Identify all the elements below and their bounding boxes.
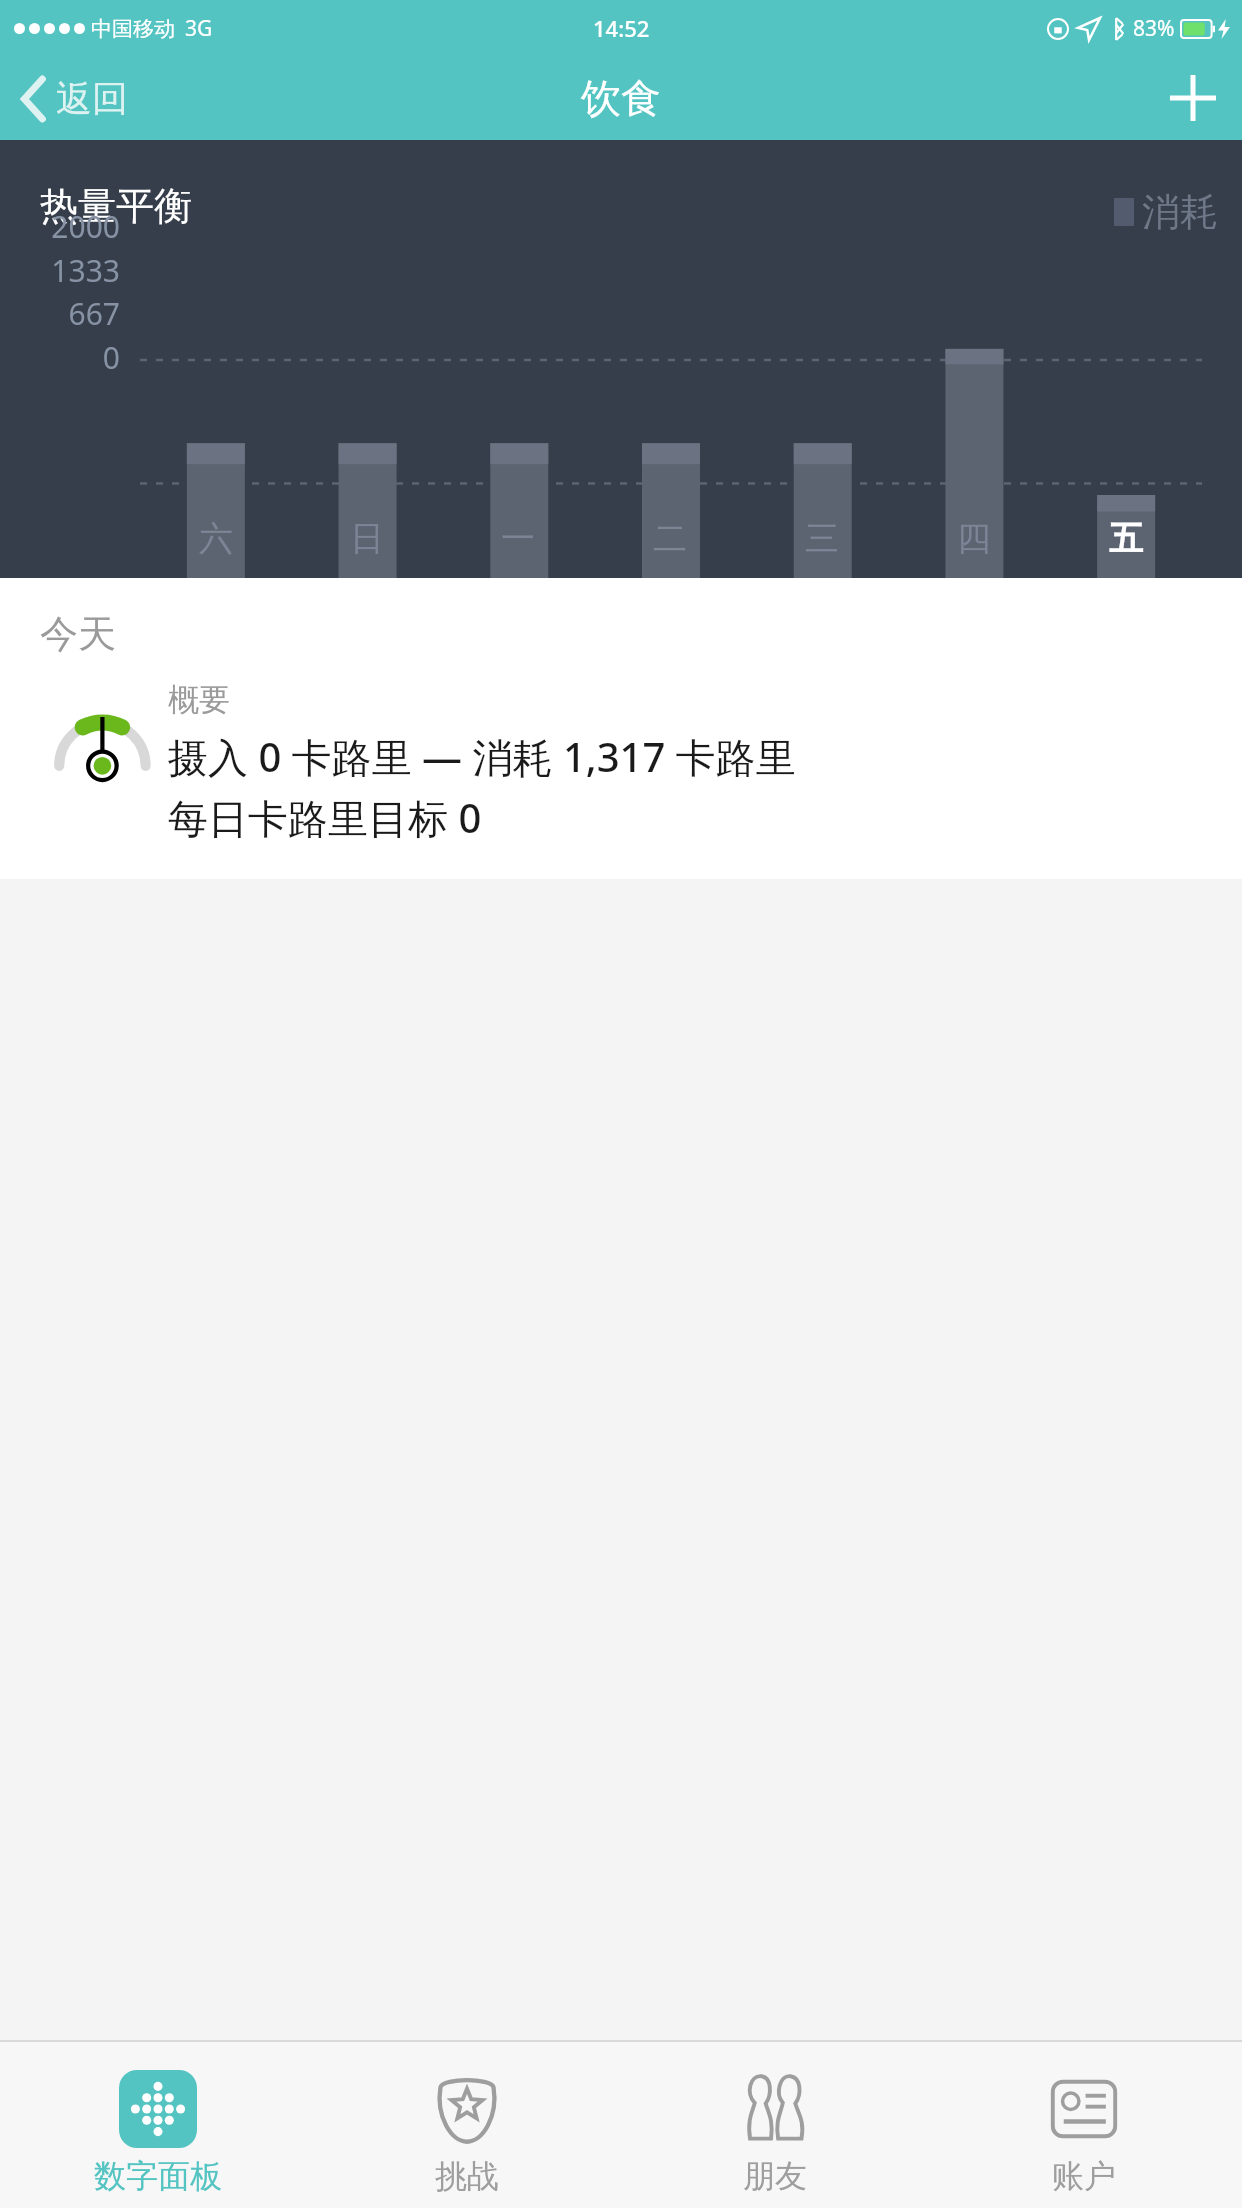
button[interactable]: 数字面板 bbox=[8, 2042, 308, 2208]
staticText: 饮食 bbox=[581, 73, 661, 123]
staticText: 中国移动 bbox=[91, 16, 175, 42]
staticText: 今天 bbox=[40, 610, 116, 658]
staticText: 日 bbox=[350, 517, 384, 560]
staticText: 账户 bbox=[1052, 2156, 1116, 2196]
button[interactable]: 朋友 bbox=[625, 2042, 925, 2208]
staticText: 摄入 0 卡路里 — 消耗 1,317 卡路里 bbox=[168, 729, 796, 784]
staticText: 二 bbox=[653, 517, 687, 560]
staticText: 0 bbox=[30, 337, 120, 378]
button[interactable]: 返回 bbox=[0, 68, 148, 129]
staticText: 概要 bbox=[168, 680, 230, 719]
staticText: 83% bbox=[1133, 14, 1175, 43]
staticText: 热量平衡 bbox=[40, 182, 192, 230]
staticText: 1333 bbox=[30, 250, 120, 291]
staticText: 3G bbox=[185, 14, 213, 43]
button[interactable]: 概要 bbox=[0, 658, 1242, 879]
staticText: 返回 bbox=[56, 76, 128, 121]
staticText: 14:52 bbox=[593, 13, 650, 43]
staticText: 2000 bbox=[30, 206, 120, 247]
staticText: 五 bbox=[1109, 517, 1143, 560]
staticText: 数字面板 bbox=[94, 2156, 222, 2196]
staticText: 挑战 bbox=[435, 2156, 499, 2196]
staticText: 三 bbox=[805, 517, 839, 560]
staticText: 四 bbox=[957, 517, 991, 560]
staticText: 每日卡路里目标 0 bbox=[168, 790, 482, 845]
staticText: 消耗 bbox=[1142, 188, 1218, 236]
button[interactable]: 账户 bbox=[934, 2042, 1234, 2208]
staticText: 六 bbox=[199, 517, 233, 560]
button[interactable]: Add bbox=[1144, 61, 1242, 135]
staticText: 667 bbox=[30, 293, 120, 334]
button[interactable]: 挑战 bbox=[317, 2042, 617, 2208]
staticText: 朋友 bbox=[743, 2156, 807, 2196]
staticText: 一 bbox=[501, 517, 535, 560]
button[interactable]: 消耗 bbox=[1114, 188, 1242, 236]
